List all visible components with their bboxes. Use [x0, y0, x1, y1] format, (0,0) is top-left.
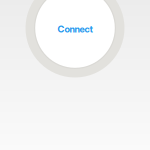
staticText: Connect [57, 23, 92, 35]
button[interactable]: Connect [25, 0, 124, 77]
